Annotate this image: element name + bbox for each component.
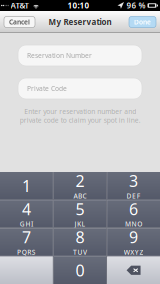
button[interactable]: 7 — [0, 228, 53, 256]
staticText: 4 — [22, 198, 31, 220]
staticText: 0 — [75, 260, 84, 281]
staticText: 2 — [75, 170, 84, 191]
button[interactable]: 9 — [107, 228, 160, 256]
staticText: PQRS — [17, 248, 36, 257]
staticText: TUV — [73, 248, 87, 257]
staticText: 5 — [75, 198, 84, 220]
staticText: 10:10 — [67, 0, 89, 11]
staticText: Enter your reservation number and privat… — [19, 107, 140, 125]
staticText: AT&T — [10, 0, 29, 11]
staticText: 3 — [129, 170, 138, 191]
staticText: ABC — [73, 191, 87, 200]
staticText: Done — [134, 18, 151, 26]
staticText: Private Code — [27, 84, 67, 93]
button[interactable]: Done — [129, 16, 156, 27]
staticText: My Reservation — [48, 17, 111, 27]
staticText: JKL — [74, 220, 86, 228]
button[interactable]: 3 — [107, 172, 160, 199]
button[interactable]: 1 — [0, 172, 53, 199]
button[interactable]: 8 — [54, 228, 106, 256]
staticText: DEF — [126, 191, 141, 200]
button[interactable]: Cancel — [4, 16, 35, 27]
staticText: WXYZ — [124, 248, 143, 257]
button[interactable]: 0 — [54, 256, 106, 284]
staticText: Cancel — [9, 18, 30, 26]
staticText: 9 — [129, 226, 138, 248]
staticText: GHI — [20, 220, 33, 228]
staticText: MNO — [125, 220, 142, 228]
staticText: 1 — [22, 175, 31, 196]
button[interactable]: 6 — [107, 200, 160, 228]
button[interactable]: 4 — [0, 200, 53, 228]
button[interactable]: 5 — [54, 200, 106, 228]
staticText: 8 — [75, 226, 84, 248]
staticText: 6 — [129, 198, 138, 220]
staticText: 7 — [22, 226, 31, 248]
button[interactable]: 2 — [54, 172, 106, 199]
staticText: Reservation Number — [27, 51, 92, 60]
button[interactable]: Delete — [107, 256, 160, 284]
staticText: 96 % — [126, 0, 145, 11]
